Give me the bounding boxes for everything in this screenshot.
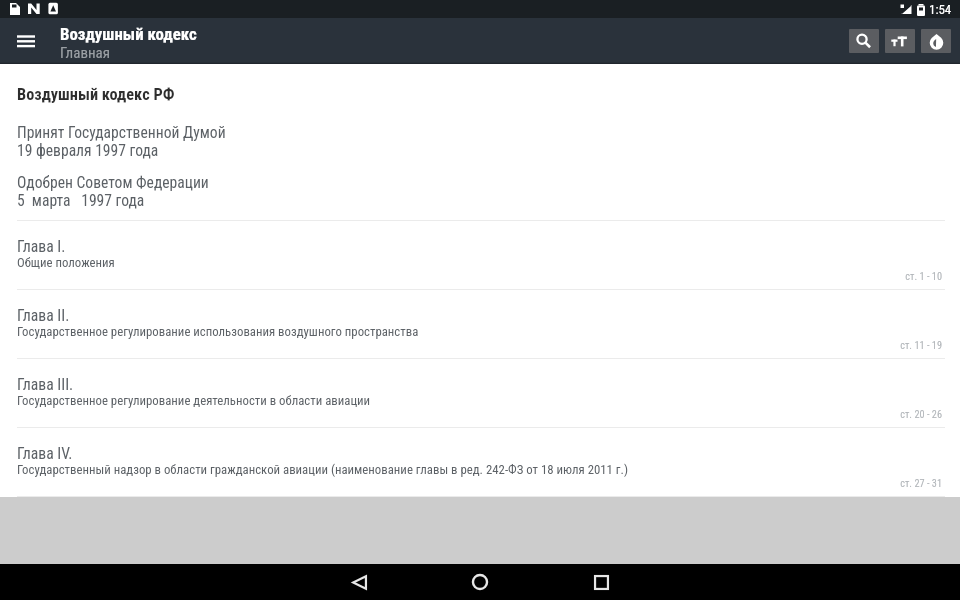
button[interactable]: Open navigation menu	[10, 25, 42, 57]
staticText: Государственное регулирование использова…	[17, 324, 419, 339]
staticText: Глава IV.	[17, 444, 73, 462]
button[interactable]: Search	[849, 29, 879, 53]
staticText: Общие положения	[17, 255, 115, 270]
staticText: Воздушный кодекс РФ	[17, 85, 175, 104]
staticText: Глава I.	[17, 237, 66, 255]
staticText: Государственное регулирование деятельнос…	[17, 393, 371, 408]
staticText: ст. 27 - 31	[0, 477, 942, 489]
staticText: Одобрен Советом Федерации 5 марта 1997 г…	[17, 174, 209, 210]
staticText: ст. 1 - 10	[0, 270, 942, 282]
staticText: Воздушный кодекс	[60, 24, 197, 44]
staticText: 1:54	[929, 2, 952, 17]
staticText: Государственный надзор в области граждан…	[17, 462, 629, 477]
button[interactable]: Recent apps	[583, 564, 619, 600]
staticText: ст. 20 - 26	[0, 408, 942, 420]
button[interactable]: Глава II.	[0, 290, 960, 359]
staticText: Принят Государственной Думой 19 февраля …	[17, 124, 226, 160]
staticText: Главная	[60, 44, 111, 62]
button[interactable]: Глава III.	[0, 359, 960, 428]
staticText: ст. 11 - 19	[0, 339, 942, 351]
button[interactable]: Глава I.	[0, 221, 960, 290]
button[interactable]: Contrast	[921, 29, 951, 53]
button[interactable]: Back	[341, 564, 377, 600]
button[interactable]: Глава IV.	[0, 428, 960, 497]
button[interactable]: Home	[462, 564, 498, 600]
staticText: Глава III.	[17, 375, 74, 393]
button[interactable]: Text size	[885, 29, 915, 53]
staticText: Глава II.	[17, 306, 70, 324]
